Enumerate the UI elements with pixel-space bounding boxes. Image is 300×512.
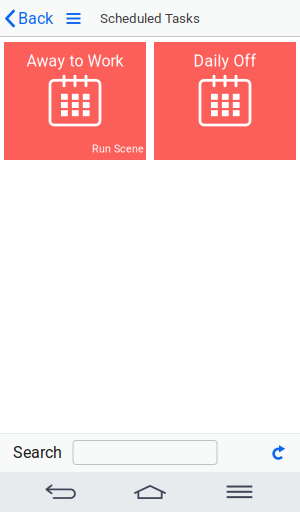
button[interactable]: Menu [57,4,90,33]
staticText: Back [18,9,53,28]
button[interactable]: Daily Off [154,42,296,160]
staticText: Run Scene [92,142,144,155]
button[interactable]: Search field [73,440,217,464]
staticText: Away to Work [26,52,123,70]
button[interactable]: Back [31,472,89,512]
staticText: Search [13,443,62,462]
staticText: Scheduled Tasks [100,11,200,26]
button[interactable]: Away to Work [4,42,146,160]
button[interactable]: Home [121,472,179,512]
button[interactable]: Recents [210,472,268,512]
staticText: Daily Off [193,52,256,70]
button[interactable]: Back [0,3,57,34]
button[interactable]: Refresh [264,438,294,466]
